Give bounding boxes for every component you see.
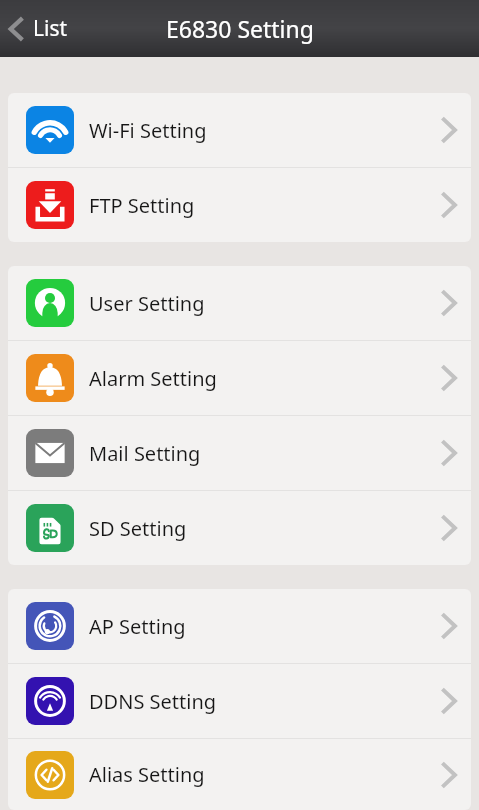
staticText: Alarm Setting	[89, 365, 217, 392]
staticText: User Setting	[89, 290, 205, 317]
button[interactable]: Mail Setting	[8, 416, 471, 490]
staticText: List	[33, 14, 68, 43]
button[interactable]: Wi-Fi Setting	[8, 93, 471, 167]
staticText: E6830 Setting	[166, 13, 314, 44]
button[interactable]: SD Setting	[8, 491, 471, 565]
staticText: FTP Setting	[89, 192, 195, 219]
button[interactable]: AP Setting	[8, 589, 471, 663]
button[interactable]: FTP Setting	[8, 168, 471, 242]
button[interactable]: List	[0, 8, 80, 49]
button[interactable]: Alias Setting	[8, 739, 471, 810]
button[interactable]: User Setting	[8, 266, 471, 340]
staticText: Mail Setting	[89, 440, 201, 467]
staticText: DDNS Setting	[89, 688, 217, 715]
button[interactable]: DDNS Setting	[8, 664, 471, 738]
button[interactable]: Alarm Setting	[8, 341, 471, 415]
staticText: Alias Setting	[89, 761, 205, 788]
staticText: Wi-Fi Setting	[89, 117, 207, 144]
staticText: SD Setting	[89, 515, 187, 542]
staticText: AP Setting	[89, 613, 186, 640]
